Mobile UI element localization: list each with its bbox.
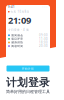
staticText: 今日安排 · 4 项 bbox=[8, 28, 29, 31]
staticText: 11:30 bbox=[39, 37, 48, 41]
staticText: 项目评审 bbox=[11, 37, 23, 40]
staticText: 21:09 bbox=[8, 14, 31, 26]
staticText: 今天 10月8日 bbox=[11, 10, 30, 13]
staticText: 09:00 bbox=[39, 33, 48, 37]
staticText: 阅读时间 bbox=[11, 44, 23, 48]
staticText: 20:30 bbox=[39, 44, 48, 48]
staticText: 计划登录 bbox=[6, 76, 50, 89]
button[interactable]: 开始计划 bbox=[6, 65, 49, 71]
staticText: 简单好用的日程管理工具 bbox=[6, 89, 50, 94]
staticText: 健身训练 bbox=[11, 41, 23, 44]
staticText: 晨间例会 bbox=[11, 34, 23, 37]
staticText: 18:00 bbox=[39, 41, 48, 44]
staticText: 9:41 bbox=[8, 5, 15, 9]
staticText: 开始计划 bbox=[22, 67, 34, 70]
